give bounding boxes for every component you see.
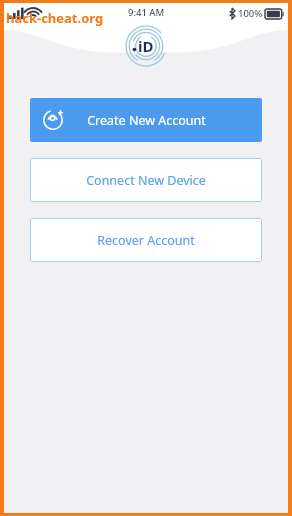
button[interactable]: Recover Account [30, 218, 262, 262]
staticText: iD [138, 36, 154, 56]
staticText: 100% [238, 7, 263, 20]
button[interactable]: Connect New Device [30, 158, 262, 202]
staticText: Create New Account [87, 112, 206, 129]
staticText: Connect New Device [86, 172, 206, 189]
staticText: 9:41 AM [128, 6, 165, 19]
staticText: Recover Account [97, 232, 195, 249]
staticText: hack-cheat.org [6, 9, 104, 27]
button[interactable]: Create New Account [30, 98, 262, 142]
